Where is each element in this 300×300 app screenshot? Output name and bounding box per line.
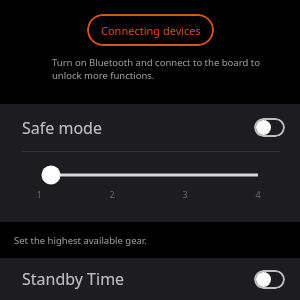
button[interactable]: Connecting devices [87, 14, 214, 46]
button[interactable]: Safe mode [0, 104, 300, 151]
staticText: 4 [255, 188, 261, 200]
button[interactable]: Toggle safe mode [254, 118, 285, 137]
staticText: Connecting devices [101, 23, 201, 38]
button[interactable]: Standby Time [0, 258, 300, 300]
staticText: 3 [182, 188, 188, 200]
staticText: 2 [109, 188, 115, 200]
staticText: Turn on Bluetooth and connect to the boa… [52, 56, 264, 82]
button[interactable]: Toggle standby time [254, 270, 285, 289]
button[interactable]: Gear level slider [0, 162, 300, 188]
staticText: Set the highest available gear. [14, 234, 147, 247]
staticText: 1 [36, 188, 42, 200]
staticText: Standby Time [22, 268, 125, 290]
staticText: Safe mode [22, 117, 102, 139]
